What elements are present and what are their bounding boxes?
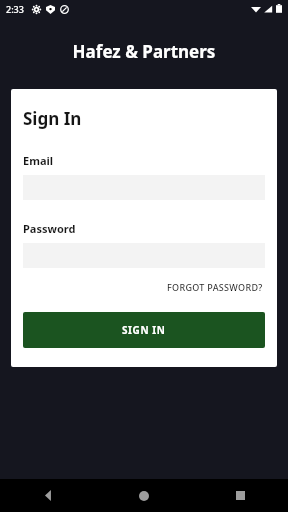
button[interactable]: FORGOT PASSWORD?	[165, 279, 265, 295]
staticText: FORGOT PASSWORD?	[167, 281, 263, 293]
staticText: 2:33	[6, 3, 24, 15]
button[interactable]: SIGN IN	[23, 312, 265, 348]
staticText: SIGN IN	[122, 323, 166, 337]
button[interactable]: Back	[0, 479, 96, 512]
staticText: Email	[23, 153, 54, 168]
staticText: Hafez & Partners	[0, 40, 288, 63]
button[interactable]: Home	[96, 479, 192, 512]
staticText: Sign In	[23, 107, 82, 130]
staticText: Password	[23, 221, 76, 236]
button[interactable]: Recent apps	[192, 479, 288, 512]
